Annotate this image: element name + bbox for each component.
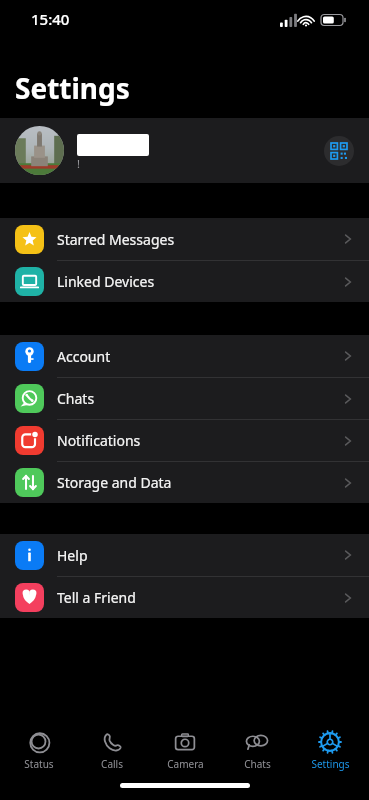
staticText: Chats — [244, 757, 271, 771]
button[interactable]: Account — [0, 335, 369, 377]
staticText: Starred Messages — [57, 230, 341, 249]
staticText: Help — [57, 546, 341, 565]
staticText: Settings — [311, 757, 350, 771]
button[interactable]: Calls — [78, 730, 146, 771]
button[interactable]: Notifications — [0, 420, 369, 461]
staticText: Account — [57, 347, 341, 366]
staticText: Tell a Friend — [57, 588, 341, 607]
button[interactable]: Starred Messages — [0, 218, 369, 260]
button[interactable]: ! — [0, 118, 369, 183]
staticText: Settings — [15, 69, 130, 107]
button[interactable]: Storage and Data — [0, 462, 369, 503]
button[interactable]: Chats — [223, 730, 291, 771]
button[interactable]: Camera — [151, 730, 219, 771]
staticText: Storage and Data — [57, 473, 341, 492]
button[interactable]: Settings — [296, 730, 364, 771]
button[interactable]: Help — [0, 534, 369, 576]
staticText: Chats — [57, 389, 341, 408]
staticText: 15:40 — [31, 9, 70, 29]
staticText: Camera — [167, 757, 204, 771]
staticText: Notifications — [57, 431, 341, 450]
button[interactable]: Status — [5, 730, 73, 771]
staticText: Calls — [101, 757, 123, 771]
staticText: Status — [24, 757, 54, 771]
staticText: ! — [77, 156, 80, 171]
button[interactable]: Linked Devices — [0, 261, 369, 302]
button[interactable]: Chats — [0, 378, 369, 419]
staticText: Linked Devices — [57, 272, 341, 291]
button[interactable]: Tell a Friend — [0, 577, 369, 618]
button[interactable]: QR code — [324, 136, 354, 166]
